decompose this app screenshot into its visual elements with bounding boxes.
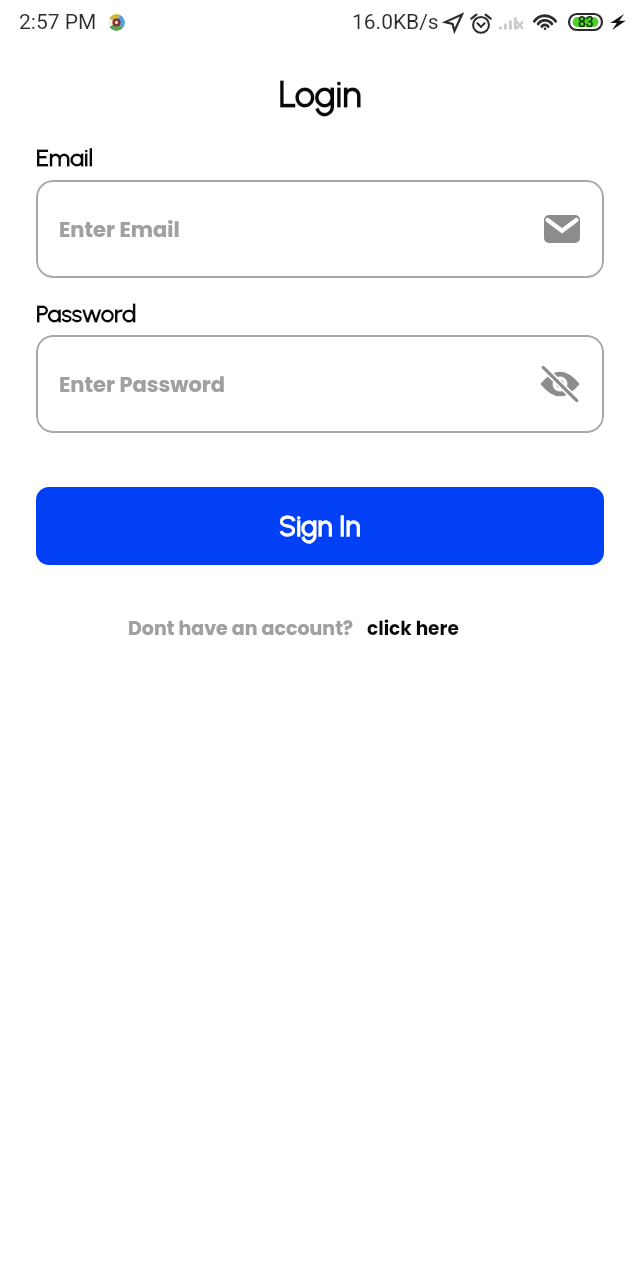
- staticText: 16.0KB/s: [352, 10, 439, 35]
- other: Maps: [108, 14, 125, 31]
- staticText: Email: [36, 143, 94, 172]
- staticText: Password: [36, 299, 137, 328]
- other: Alarm: [469, 10, 493, 34]
- button[interactable]: Sign In: [36, 487, 604, 565]
- other: Email: [544, 215, 580, 243]
- other: Charging: [610, 14, 626, 30]
- staticText: Sign In: [279, 509, 361, 543]
- staticText: Enter Password: [59, 370, 226, 399]
- staticText: Enter Email: [59, 215, 180, 244]
- staticText: Login: [0, 73, 640, 116]
- other: Show password: [540, 367, 580, 401]
- staticText: 2:57 PM: [19, 10, 97, 35]
- button[interactable]: Enter Email: [36, 180, 604, 278]
- other: Wi-Fi: [533, 10, 557, 34]
- button[interactable]: Enter Password: [36, 335, 604, 433]
- staticText: click here: [367, 616, 459, 642]
- other: Location: [444, 13, 463, 32]
- button[interactable]: click here: [367, 616, 459, 642]
- staticText: Dont have an account?: [128, 615, 354, 642]
- staticText: 83: [578, 14, 594, 30]
